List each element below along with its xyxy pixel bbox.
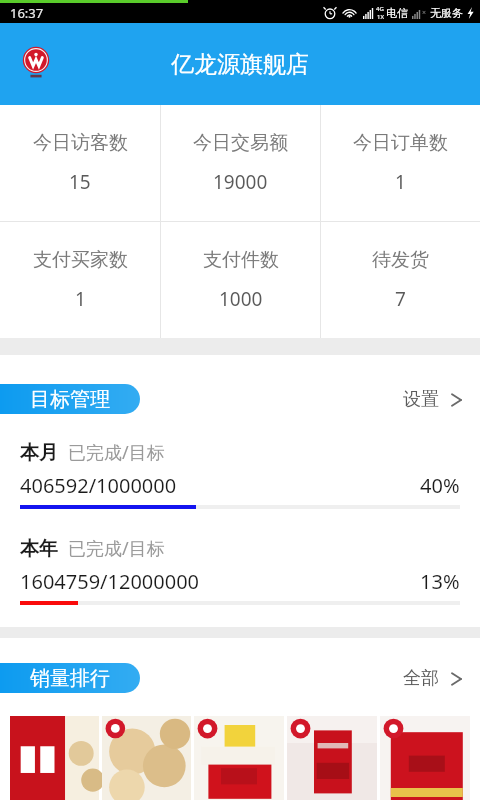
- staticText: 设置: [403, 388, 439, 411]
- staticText: 已完成/目标: [68, 440, 165, 465]
- staticText: 销量排行: [30, 666, 110, 691]
- staticText: 本年: [20, 537, 58, 561]
- staticText: 今日订单数: [353, 131, 448, 155]
- button[interactable]: 今日交易额: [161, 105, 320, 221]
- button[interactable]: 支付买家数: [0, 222, 160, 338]
- button[interactable]: Product 2: [102, 716, 191, 800]
- staticText: 406592/1000000: [20, 472, 177, 499]
- staticText: 已完成/目标: [68, 536, 165, 561]
- button[interactable]: Product 3: [194, 716, 284, 800]
- button[interactable]: 本年: [0, 536, 480, 605]
- staticText: 1X: [377, 13, 384, 21]
- staticText: 今日交易额: [193, 131, 288, 155]
- staticText: 1604759/12000000: [20, 568, 200, 595]
- button[interactable]: Product 1: [10, 716, 99, 800]
- button[interactable]: 目标管理: [0, 384, 140, 414]
- staticText: 支付买家数: [33, 248, 128, 272]
- staticText: 今日访客数: [33, 131, 128, 155]
- button[interactable]: 今日订单数: [321, 105, 480, 221]
- staticText: 7: [395, 286, 406, 312]
- button[interactable]: Product 4: [287, 716, 377, 800]
- staticText: 13%: [420, 568, 460, 595]
- staticText: 40%: [420, 472, 460, 499]
- staticText: 亿龙源旗舰店: [171, 50, 309, 79]
- staticText: 目标管理: [30, 387, 110, 412]
- button[interactable]: Store logo: [14, 42, 58, 86]
- other: View all: [451, 670, 462, 688]
- other: Settings: [451, 391, 462, 409]
- staticText: 待发货: [372, 248, 429, 272]
- staticText: 1000: [219, 286, 263, 312]
- staticText: 16:37: [10, 4, 44, 22]
- button[interactable]: 销量排行: [0, 663, 140, 693]
- button[interactable]: 今日访客数: [0, 105, 160, 221]
- staticText: 1: [75, 286, 86, 312]
- staticText: 本月: [20, 441, 58, 465]
- staticText: 19000: [213, 169, 268, 195]
- staticText: 15: [69, 169, 91, 195]
- button[interactable]: 全部: [403, 667, 462, 690]
- button[interactable]: 支付件数: [161, 222, 320, 338]
- button[interactable]: 待发货: [321, 222, 480, 338]
- button[interactable]: 设置: [403, 388, 462, 411]
- button[interactable]: Product 5: [380, 716, 470, 800]
- staticText: 全部: [403, 667, 439, 690]
- staticText: 1: [395, 169, 406, 195]
- staticText: 电信: [386, 6, 408, 20]
- staticText: 4G: [376, 5, 384, 13]
- staticText: 支付件数: [203, 248, 279, 272]
- staticText: 无服务: [430, 6, 463, 20]
- button[interactable]: 本月: [0, 440, 480, 509]
- staticText: ×: [422, 8, 427, 18]
